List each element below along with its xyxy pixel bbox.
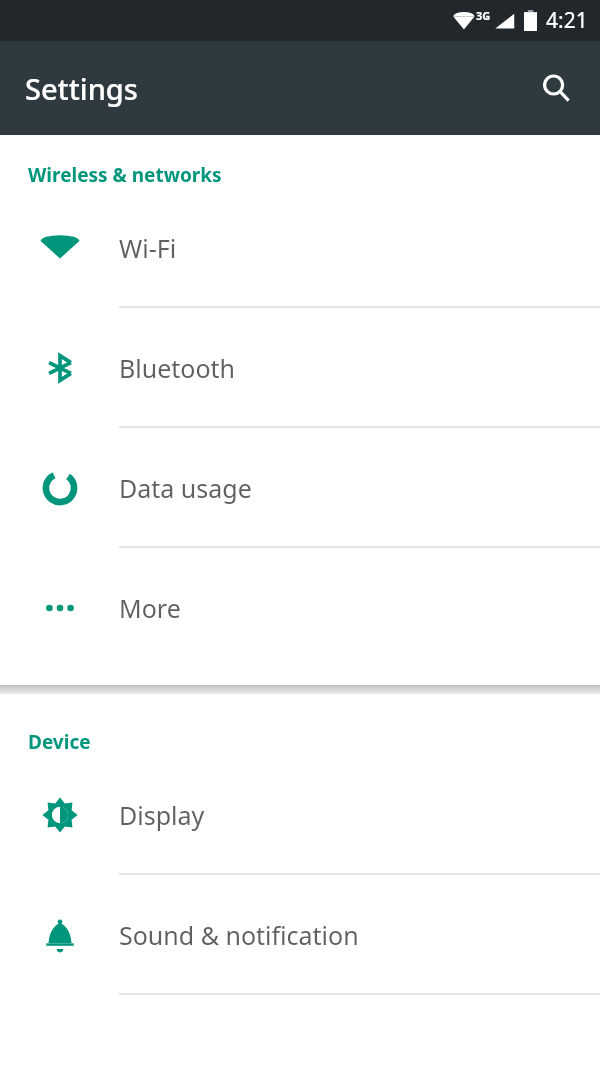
- button[interactable]: More: [0, 548, 600, 668]
- staticText: Wi-Fi: [119, 231, 177, 265]
- button[interactable]: Wi-Fi: [0, 188, 600, 308]
- button[interactable]: Search: [528, 60, 584, 116]
- staticText: Display: [119, 798, 205, 832]
- staticText: 3G: [476, 8, 491, 23]
- staticText: More: [119, 591, 181, 625]
- staticText: Device: [28, 729, 91, 755]
- staticText: Settings: [25, 69, 138, 108]
- button[interactable]: Data usage: [0, 428, 600, 548]
- button[interactable]: Display: [0, 755, 600, 875]
- staticText: Bluetooth: [119, 351, 236, 385]
- staticText: 4:21: [546, 6, 588, 35]
- button[interactable]: Sound & notification: [0, 875, 600, 995]
- staticText: Sound & notification: [119, 918, 359, 952]
- button[interactable]: Bluetooth: [0, 308, 600, 428]
- staticText: Wireless & networks: [28, 162, 222, 188]
- staticText: Data usage: [119, 471, 252, 505]
